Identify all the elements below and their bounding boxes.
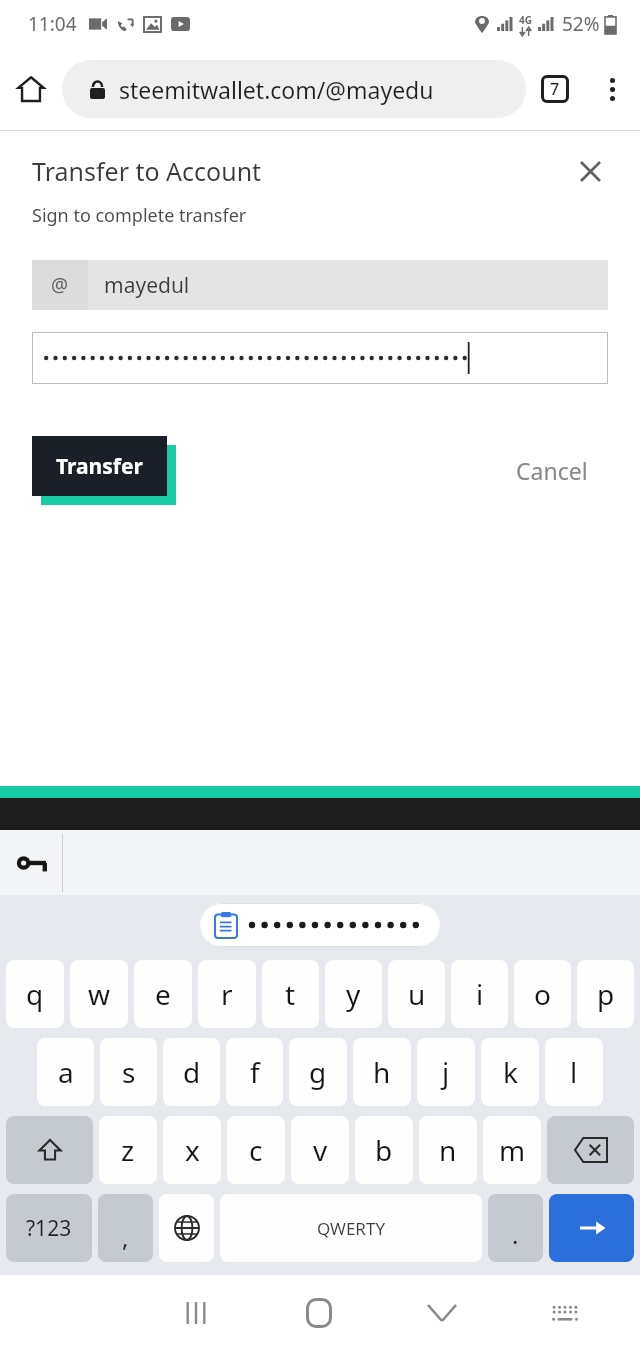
button[interactable]: h: [353, 1038, 411, 1106]
button[interactable]: Home: [257, 1275, 380, 1351]
button[interactable]: u: [388, 960, 445, 1028]
staticText: w: [88, 975, 111, 1013]
staticText: b: [375, 1131, 393, 1169]
button[interactable]: Shift: [6, 1116, 93, 1184]
button[interactable]: r: [198, 960, 256, 1028]
button[interactable]: Cancel: [516, 455, 588, 486]
staticText: h: [373, 1053, 391, 1091]
staticText: ?123: [26, 1214, 72, 1243]
button[interactable]: Hide keyboard: [380, 1275, 503, 1351]
staticText: q: [26, 975, 44, 1013]
button[interactable]: c: [227, 1116, 285, 1184]
button[interactable]: k: [481, 1038, 539, 1106]
button[interactable]: d: [163, 1038, 220, 1106]
button[interactable]: Backspace: [547, 1116, 634, 1184]
staticText: a: [58, 1053, 74, 1091]
button[interactable]: g: [289, 1038, 347, 1106]
staticText: p: [597, 975, 615, 1013]
button[interactable]: l: [545, 1038, 603, 1106]
button[interactable]: o: [514, 960, 571, 1028]
staticText: l: [570, 1053, 578, 1091]
staticText: @: [51, 272, 69, 298]
staticText: c: [249, 1131, 263, 1169]
staticText: 52%: [562, 11, 600, 37]
staticText: v: [313, 1131, 328, 1169]
staticText: t: [285, 975, 296, 1013]
button[interactable]: steemitwallet.com/@mayedu: [62, 60, 526, 118]
button[interactable]: x: [163, 1116, 221, 1184]
button[interactable]: Home: [0, 58, 62, 120]
staticText: 11:04: [28, 11, 77, 37]
staticText: k: [503, 1053, 518, 1091]
staticText: Cancel: [516, 455, 588, 486]
button[interactable]: a: [37, 1038, 94, 1106]
button[interactable]: [215, 903, 425, 947]
staticText: f: [250, 1053, 260, 1091]
button[interactable]: f: [226, 1038, 283, 1106]
staticText: .: [512, 1218, 519, 1251]
staticText: i: [476, 975, 484, 1013]
button[interactable]: y: [325, 960, 382, 1028]
button[interactable]: Period: [488, 1194, 543, 1262]
staticText: Transfer to Account: [32, 154, 262, 188]
button[interactable]: w: [70, 960, 128, 1028]
staticText: mayedul: [104, 271, 190, 300]
button[interactable]: v: [291, 1116, 349, 1184]
staticText: n: [439, 1131, 457, 1169]
button[interactable]: Keyboard layout: [503, 1275, 626, 1351]
button[interactable]: Enter: [549, 1194, 634, 1262]
button[interactable]: m: [483, 1116, 541, 1184]
button[interactable]: j: [417, 1038, 475, 1106]
staticText: u: [408, 975, 426, 1013]
button[interactable]: s: [100, 1038, 157, 1106]
staticText: 7: [550, 78, 560, 100]
button[interactable]: i: [451, 960, 508, 1028]
staticText: 4G: [519, 13, 532, 27]
staticText: g: [309, 1053, 327, 1091]
staticText: z: [121, 1131, 135, 1169]
button[interactable]: Tabs: [526, 60, 584, 118]
button[interactable]: Comma: [98, 1194, 153, 1262]
staticText: x: [185, 1131, 200, 1169]
button[interactable]: Change language: [159, 1194, 214, 1262]
button[interactable]: p: [577, 960, 634, 1028]
staticText: steemitwallet.com/@mayedu: [119, 74, 434, 105]
button[interactable]: b: [355, 1116, 413, 1184]
staticText: r: [221, 975, 233, 1013]
button[interactable]: e: [134, 960, 192, 1028]
button[interactable]: t: [262, 960, 319, 1028]
staticText: s: [122, 1053, 136, 1091]
button[interactable]: Password manager: [0, 830, 62, 895]
button[interactable]: z: [99, 1116, 157, 1184]
staticText: m: [499, 1131, 526, 1169]
button[interactable]: Transfer: [32, 436, 167, 496]
button[interactable]: Recent apps: [134, 1275, 257, 1351]
staticText: e: [155, 975, 171, 1013]
staticText: d: [183, 1053, 201, 1091]
button[interactable]: More options: [584, 61, 640, 117]
button[interactable]: n: [419, 1116, 477, 1184]
staticText: ,: [122, 1221, 129, 1254]
staticText: j: [442, 1053, 450, 1091]
staticText: y: [346, 975, 361, 1013]
button[interactable]: q: [6, 960, 64, 1028]
button[interactable]: QWERTY: [220, 1194, 482, 1262]
staticText: Transfer: [56, 452, 143, 481]
button[interactable]: ?123: [6, 1194, 92, 1262]
staticText: QWERTY: [317, 1217, 386, 1240]
button[interactable]: Close: [572, 153, 608, 189]
staticText: Sign to complete transfer: [32, 203, 247, 228]
staticText: o: [534, 975, 551, 1013]
